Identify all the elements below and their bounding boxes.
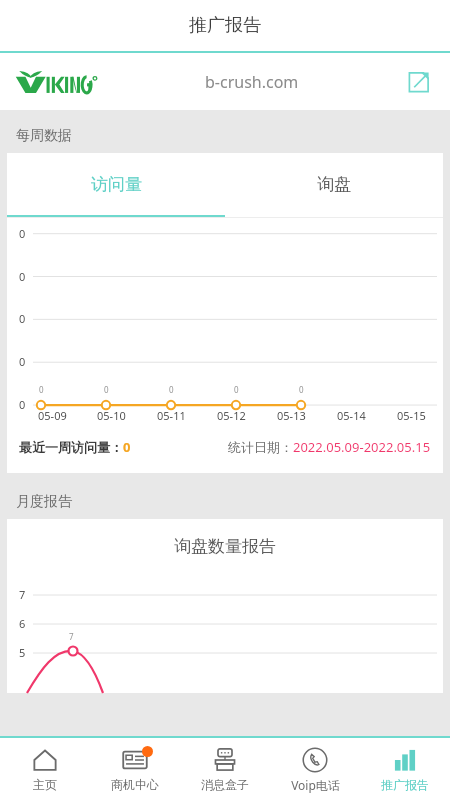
staticText: 询盘数量报告	[174, 536, 276, 557]
staticText: 消息盒子	[201, 777, 249, 792]
staticText: 0	[19, 226, 26, 241]
button[interactable]: 推广报告	[360, 738, 450, 800]
button[interactable]: 消息盒子	[180, 738, 270, 800]
staticText: 05-12	[217, 408, 246, 423]
staticText: 0	[19, 397, 26, 412]
staticText: 访问量	[91, 174, 142, 195]
button[interactable]: Open website	[402, 65, 436, 99]
staticText: 0	[104, 384, 109, 395]
staticText: 05-10	[97, 408, 126, 423]
staticText: 0	[19, 269, 26, 284]
staticText: b-crush.com	[205, 71, 299, 93]
staticText: 0	[299, 384, 304, 395]
button[interactable]: 访问量	[7, 153, 225, 215]
staticText: 05-11	[157, 408, 186, 423]
staticText: 主页	[33, 777, 57, 792]
staticText: 商机中心	[111, 777, 159, 792]
button[interactable]: Voip电话	[270, 738, 360, 800]
staticText: 0	[123, 438, 131, 456]
staticText: 2022.05.09-2022.05.15	[293, 438, 431, 456]
staticText: 7	[69, 631, 74, 642]
button[interactable]: 主页	[0, 738, 90, 800]
staticText: 统计日期：	[228, 439, 293, 455]
staticText: 0	[39, 384, 44, 395]
staticText: 每周数据	[16, 127, 72, 145]
staticText: 0	[169, 384, 174, 395]
staticText: 05-15	[397, 408, 426, 423]
staticText: 7	[19, 587, 26, 602]
button[interactable]: 询盘	[225, 153, 443, 215]
staticText: 05-14	[337, 408, 366, 423]
staticText: 推广报告	[381, 777, 429, 792]
staticText: 最近一周访问量：	[19, 439, 123, 455]
staticText: 0	[234, 384, 239, 395]
staticText: 05-13	[277, 408, 306, 423]
staticText: Voip电话	[291, 777, 340, 793]
button[interactable]: 商机中心	[90, 738, 180, 800]
staticText: 5	[19, 645, 26, 660]
staticText: 6	[19, 616, 26, 631]
staticText: 月度报告	[16, 493, 72, 511]
staticText: 0	[19, 354, 26, 369]
staticText: 0	[19, 311, 26, 326]
staticText: 询盘	[317, 174, 351, 195]
staticText: 推广报告	[189, 14, 261, 37]
staticText: 05-09	[38, 408, 67, 423]
